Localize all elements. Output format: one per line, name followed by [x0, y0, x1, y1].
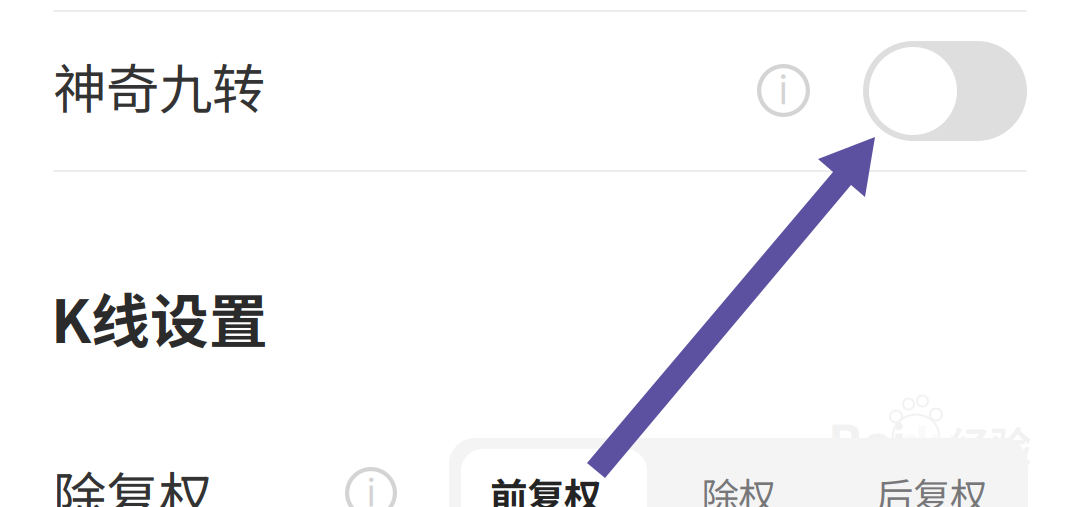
staticText: Bai: [829, 412, 906, 474]
staticText: 经验: [949, 414, 1031, 474]
staticText: 前复权: [490, 467, 601, 507]
button[interactable]: 前复权: [449, 434, 642, 507]
staticText: i: [779, 65, 788, 114]
staticText: K线设置: [51, 275, 268, 360]
staticText: 后复权: [876, 467, 987, 507]
staticText: 除复权: [53, 455, 212, 507]
staticText: i: [367, 468, 375, 507]
staticText: jingyan.baidu.com: [829, 452, 1017, 507]
button[interactable]: 关于除复权: [345, 467, 397, 507]
staticText: du: [897, 413, 961, 475]
staticText: 神奇九转: [53, 47, 265, 124]
button[interactable]: 神奇九转: [0, 12, 1080, 170]
button[interactable]: 除权: [642, 434, 835, 507]
staticText: 除权: [701, 467, 775, 507]
button[interactable]: 后复权: [835, 434, 1028, 507]
